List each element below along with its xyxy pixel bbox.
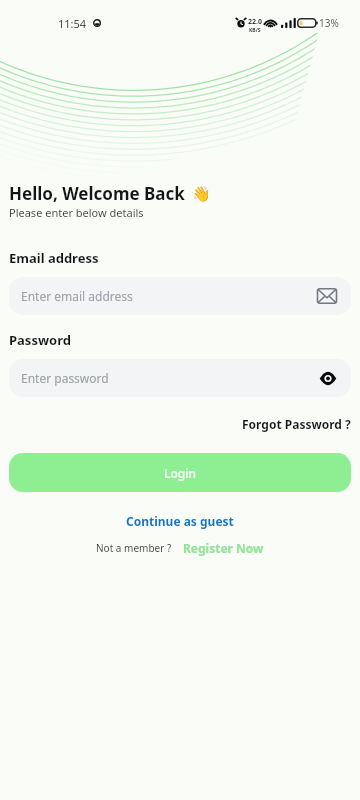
button[interactable]: Login [9, 453, 351, 492]
staticText: 👋 [192, 185, 211, 203]
staticText: Register Now [183, 540, 264, 556]
staticText: 22.0 [248, 17, 262, 27]
staticText: Enter email address [21, 288, 133, 304]
staticText: KB/S [249, 27, 261, 34]
staticText: Forgot Password ? [242, 416, 351, 432]
other: Show password [319, 371, 337, 386]
button[interactable]: Forgot Password ? [242, 416, 351, 432]
staticText: 13% [319, 16, 339, 30]
button[interactable]: Register Now [183, 540, 264, 556]
staticText: Continue as guest [126, 513, 234, 529]
staticText: Email address [9, 249, 99, 267]
button[interactable]: Enter password [9, 359, 351, 397]
button[interactable]: Enter email address [9, 277, 351, 315]
staticText: Hello, Welcome Back [9, 182, 185, 205]
staticText: Login [164, 465, 196, 481]
staticText: Enter password [21, 370, 109, 386]
staticText: 11:54 [58, 16, 87, 31]
staticText: Not a member ? [96, 541, 172, 555]
staticText: Password [9, 331, 71, 349]
other: Email [317, 288, 337, 304]
button[interactable]: Continue as guest [126, 513, 234, 529]
staticText: Please enter below details [9, 205, 144, 220]
